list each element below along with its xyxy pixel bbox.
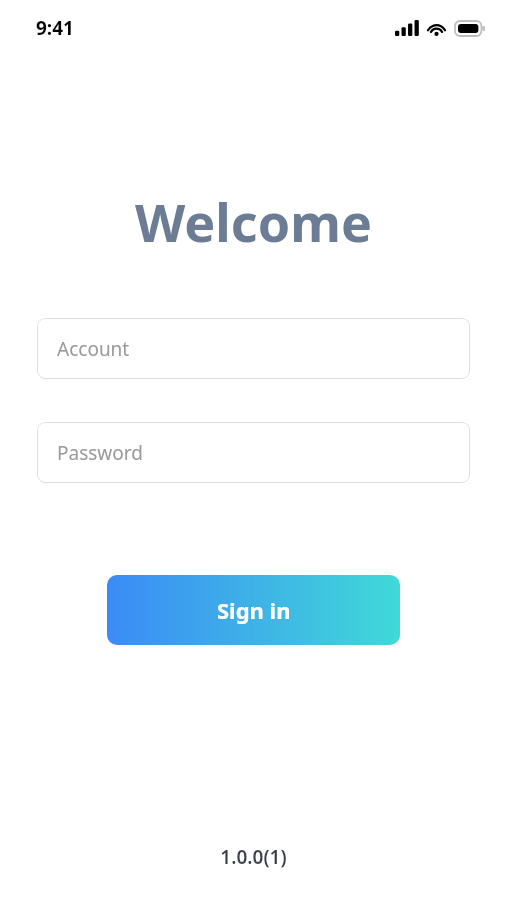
- staticText: Sign in: [217, 595, 291, 625]
- button[interactable]: Sign in: [107, 575, 400, 645]
- button[interactable]: Account: [37, 318, 470, 379]
- staticText: 1.0.0(1): [220, 844, 287, 870]
- staticText: Welcome: [135, 186, 372, 257]
- staticText: Account: [57, 336, 130, 362]
- staticText: 9:41: [36, 15, 74, 41]
- staticText: Password: [57, 440, 143, 466]
- button[interactable]: Password: [37, 422, 470, 483]
